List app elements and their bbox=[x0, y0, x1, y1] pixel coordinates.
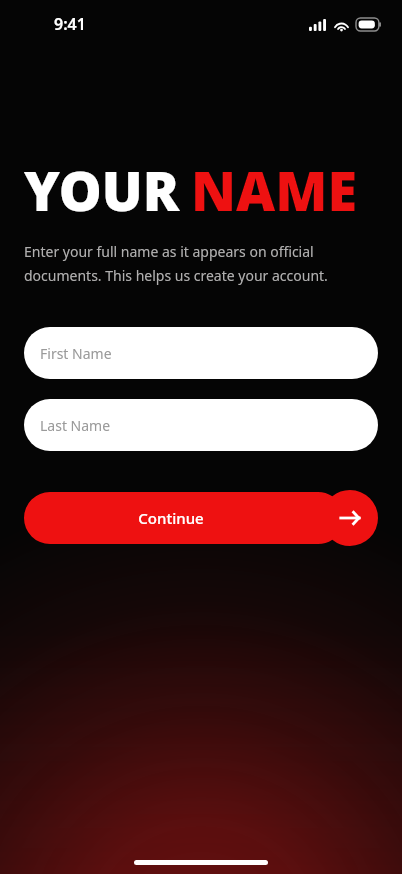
staticText: First Name bbox=[40, 344, 112, 363]
staticText: Last Name bbox=[40, 416, 111, 435]
button[interactable]: Last Name bbox=[24, 399, 378, 451]
staticText: Enter your full name as it appears on of… bbox=[24, 242, 356, 285]
button[interactable]: Continue bbox=[24, 490, 378, 546]
button[interactable]: First Name bbox=[24, 327, 378, 379]
staticText: Continue bbox=[138, 508, 204, 528]
staticText: YOUR bbox=[24, 153, 180, 227]
staticText: NAME bbox=[191, 153, 358, 227]
staticText: 9:41 bbox=[54, 13, 86, 35]
